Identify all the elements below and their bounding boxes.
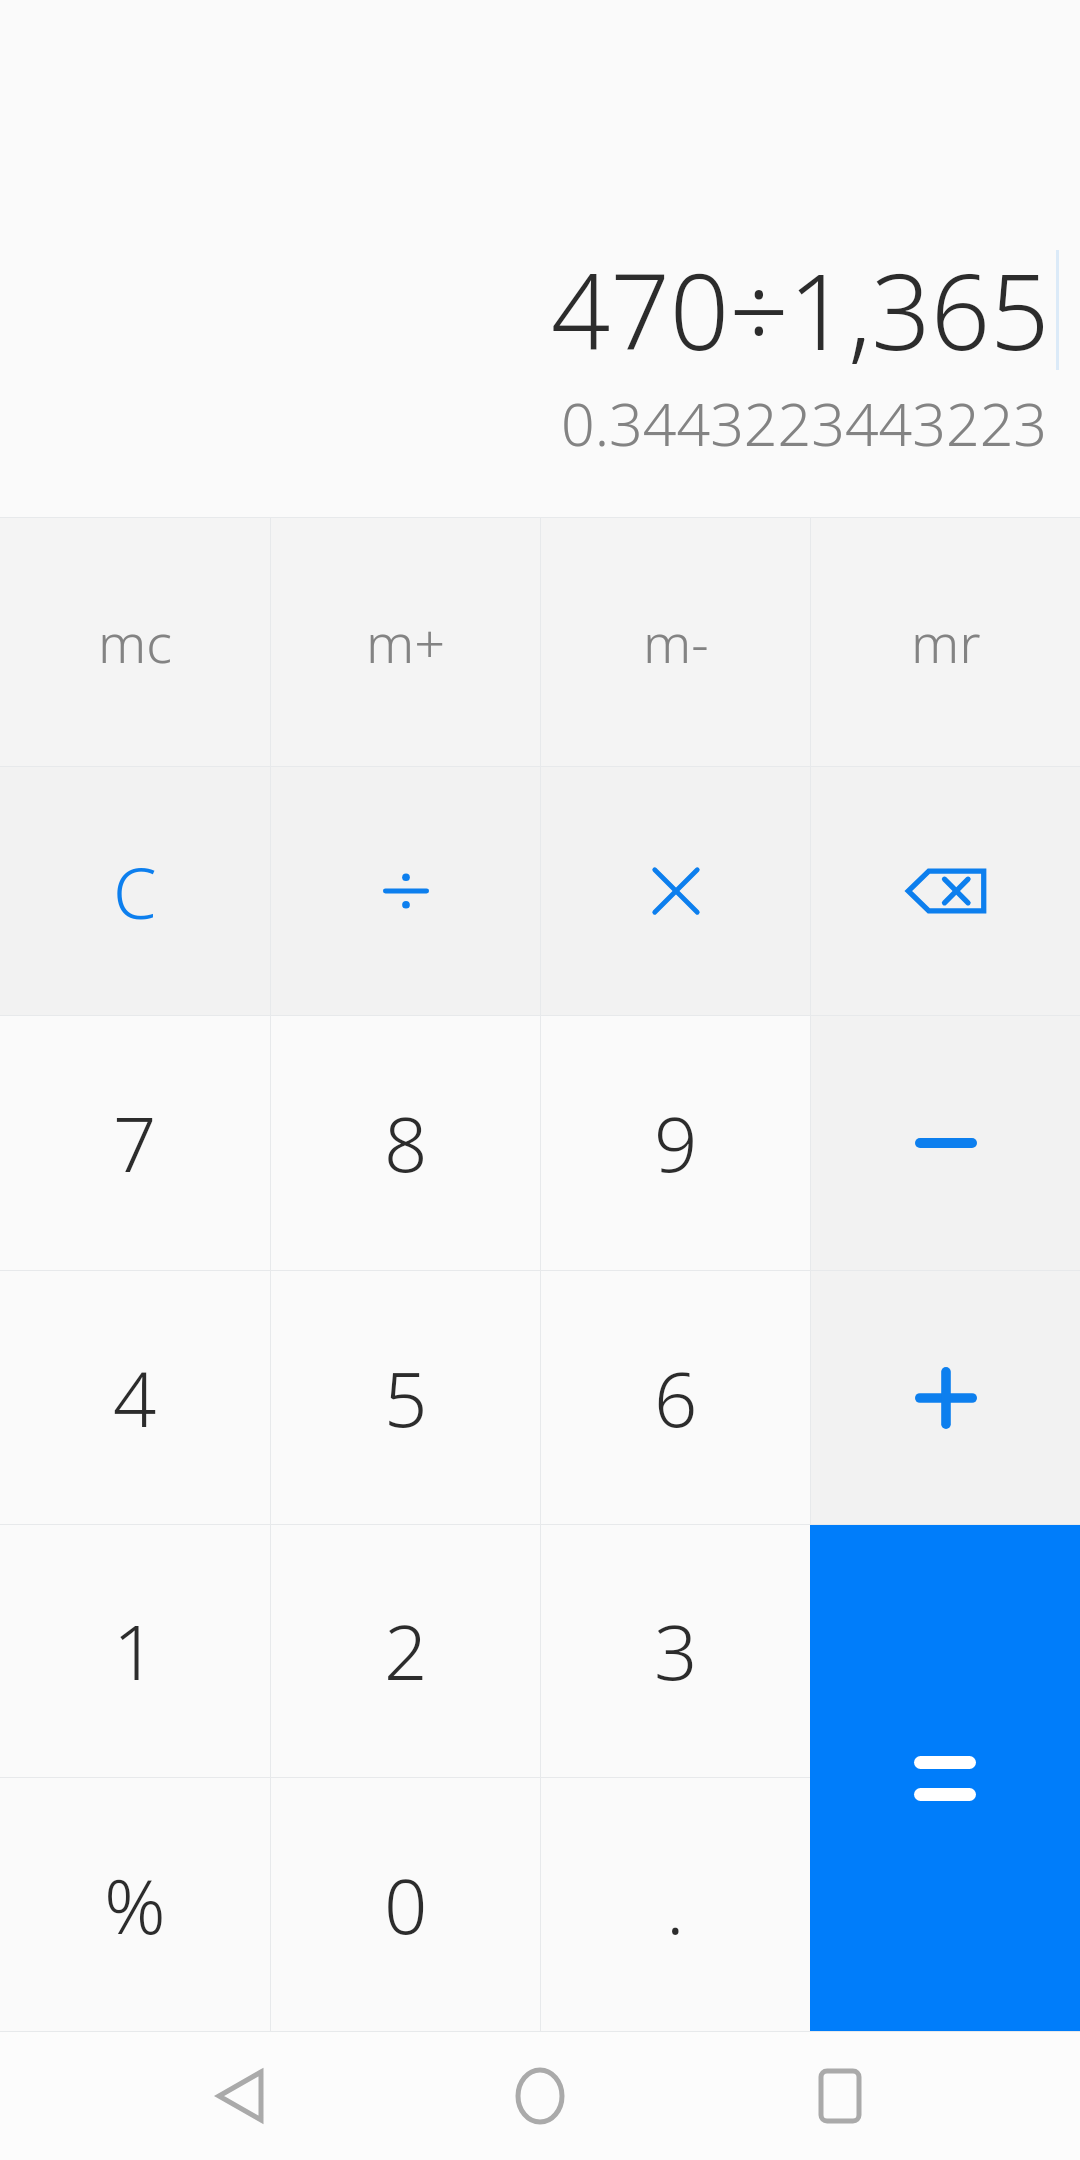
button[interactable]: C	[0, 767, 270, 1015]
button[interactable]: 7	[0, 1016, 270, 1270]
button[interactable]: Back	[180, 2036, 300, 2156]
staticText: 3	[654, 1599, 698, 1703]
button[interactable]: 0	[271, 1778, 540, 2031]
staticText: mr	[911, 605, 981, 679]
button[interactable]: %	[0, 1778, 270, 2031]
button[interactable]: 4	[0, 1271, 270, 1524]
staticText: 1	[113, 1599, 157, 1703]
button[interactable]: Backspace	[811, 767, 1080, 1015]
staticText: 8	[384, 1091, 428, 1195]
button[interactable]: 3	[541, 1525, 810, 1777]
button[interactable]: 5	[271, 1271, 540, 1524]
button[interactable]: mr	[811, 518, 1080, 766]
button[interactable]: mc	[0, 518, 270, 766]
button[interactable]: 1	[0, 1525, 270, 1777]
staticText: m+	[366, 605, 446, 679]
staticText: 9	[654, 1091, 698, 1195]
button[interactable]: m-	[541, 518, 810, 766]
button[interactable]: Multiply	[541, 767, 810, 1015]
staticText: C	[113, 844, 157, 939]
staticText: 470÷1,365	[551, 239, 1050, 381]
button[interactable]: 6	[541, 1271, 810, 1524]
button[interactable]: Minus	[811, 1016, 1080, 1270]
staticText: 4	[113, 1346, 157, 1450]
staticText: 0	[384, 1853, 428, 1957]
staticText: m-	[643, 605, 709, 679]
staticText: .	[666, 1853, 685, 1957]
staticText: %	[104, 1853, 166, 1957]
button[interactable]: 2	[271, 1525, 540, 1777]
button[interactable]: Home	[480, 2036, 600, 2156]
staticText: mc	[98, 605, 172, 679]
staticText: 5	[384, 1346, 428, 1450]
button[interactable]: Plus	[811, 1271, 1080, 1524]
staticText: 0.3443223443223	[561, 383, 1048, 463]
button[interactable]: .	[541, 1778, 810, 2031]
button[interactable]: 8	[271, 1016, 540, 1270]
staticText: 6	[654, 1346, 698, 1450]
staticText: 2	[384, 1599, 428, 1703]
button[interactable]: m+	[271, 518, 540, 766]
staticText: 7	[113, 1091, 157, 1195]
button[interactable]: 9	[541, 1016, 810, 1270]
button[interactable]: Divide	[271, 767, 540, 1015]
button[interactable]: Equals	[810, 1525, 1080, 2031]
button[interactable]: Recent apps	[780, 2036, 900, 2156]
